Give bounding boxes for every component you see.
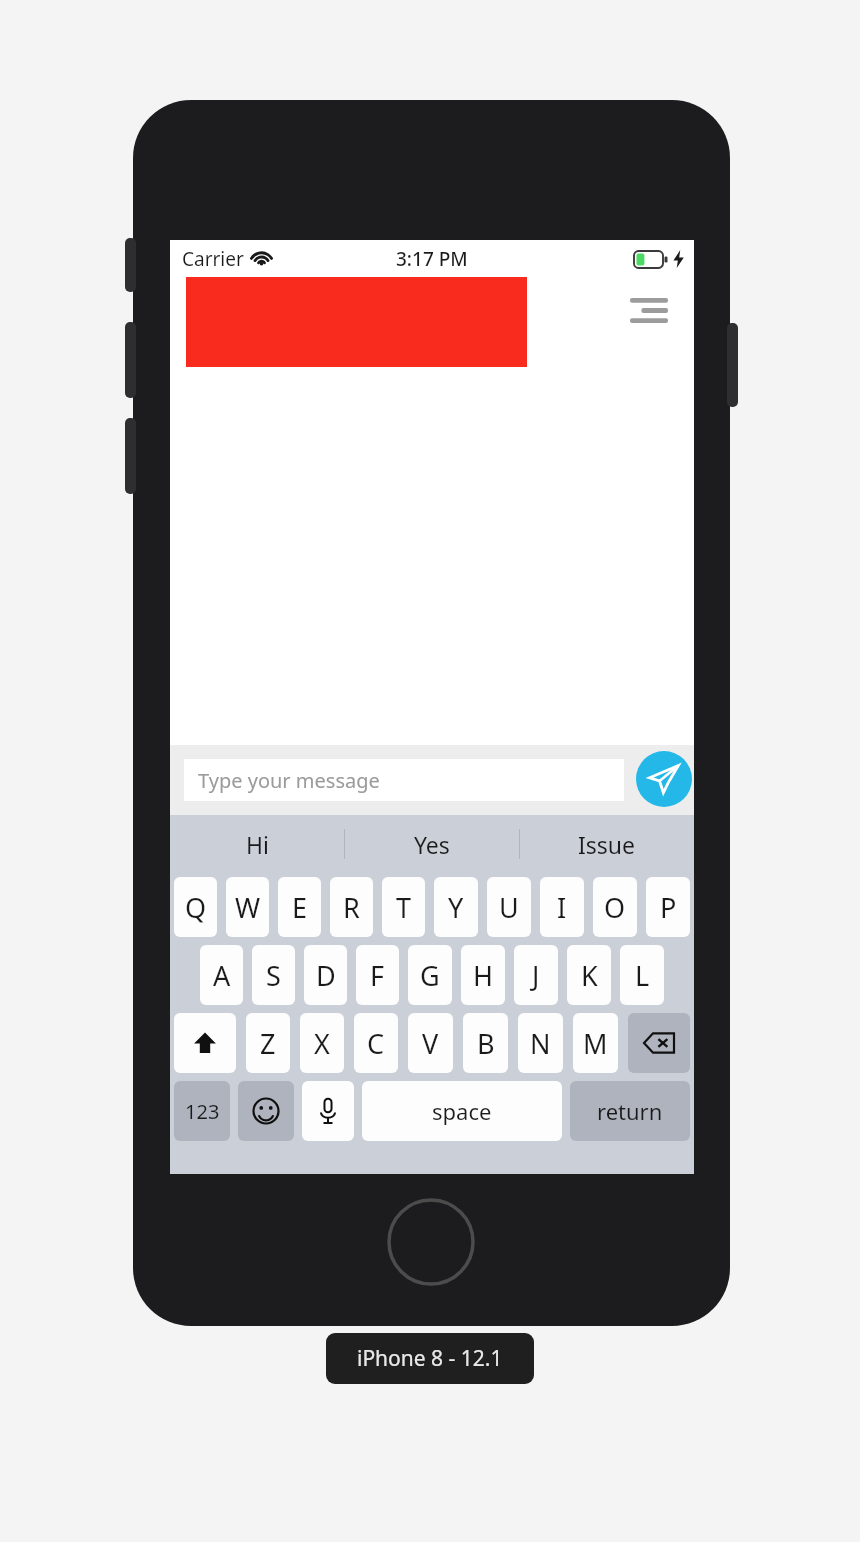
button[interactable]: Y [434, 877, 478, 937]
button[interactable]: D [304, 945, 347, 1005]
staticText: return [597, 1096, 663, 1126]
button[interactable]: Q [174, 877, 217, 937]
button[interactable]: S [252, 945, 295, 1005]
staticText: G [420, 957, 440, 994]
button[interactable]: return [570, 1081, 690, 1141]
button[interactable]: R [330, 877, 373, 937]
staticText: A [213, 957, 231, 994]
button[interactable]: Menu [620, 286, 678, 334]
staticText: X [314, 1025, 330, 1062]
staticText: U [499, 889, 519, 926]
button[interactable]: Dictation [302, 1081, 354, 1141]
button[interactable]: E [278, 877, 321, 937]
button[interactable]: 123 [174, 1081, 230, 1141]
staticText: R [343, 889, 360, 926]
button[interactable]: Emoji [238, 1081, 294, 1141]
staticText: Q [185, 889, 207, 926]
staticText: Y [448, 889, 464, 926]
button[interactable]: Shift [174, 1013, 236, 1073]
button[interactable]: M [573, 1013, 618, 1073]
staticText: W [235, 889, 261, 926]
button[interactable]: X [300, 1013, 344, 1073]
staticText: D [316, 957, 336, 994]
button[interactable]: H [461, 945, 505, 1005]
staticText: iPhone 8 - 12.1 [357, 1344, 503, 1373]
staticText: J [532, 957, 540, 994]
button[interactable]: J [514, 945, 558, 1005]
button[interactable]: A [200, 945, 243, 1005]
staticText: F [370, 957, 385, 994]
button[interactable]: K [567, 945, 611, 1005]
staticText: L [635, 957, 650, 994]
button[interactable]: Hi [170, 815, 344, 873]
staticText: B [477, 1025, 495, 1062]
staticText: N [530, 1025, 551, 1062]
staticText: 3:17 PM [396, 246, 468, 272]
button[interactable]: Yes [345, 815, 519, 873]
staticText: P [660, 889, 677, 926]
button[interactable]: I [540, 877, 584, 937]
button[interactable]: Issue [520, 815, 694, 873]
button[interactable]: space [362, 1081, 562, 1141]
staticText: K [581, 957, 598, 994]
button[interactable]: L [620, 945, 664, 1005]
staticText: V [422, 1025, 439, 1062]
staticText: Issue [578, 829, 636, 860]
staticText: Yes [414, 829, 450, 860]
staticText: Type your message [198, 767, 380, 794]
button[interactable]: W [226, 877, 269, 937]
staticText: S [266, 957, 281, 994]
staticText: C [367, 1025, 385, 1062]
staticText: Z [260, 1025, 276, 1062]
button[interactable]: G [408, 945, 452, 1005]
staticText: space [432, 1096, 492, 1126]
staticText: I [557, 889, 567, 926]
button[interactable]: Backspace [628, 1013, 690, 1073]
button[interactable]: T [382, 877, 425, 937]
button[interactable]: Send [636, 751, 692, 807]
staticText: Carrier [182, 246, 244, 272]
button[interactable]: C [354, 1013, 398, 1073]
button[interactable]: P [646, 877, 690, 937]
button[interactable]: Z [246, 1013, 290, 1073]
button[interactable]: N [518, 1013, 563, 1073]
staticText: M [583, 1025, 608, 1062]
button[interactable]: V [408, 1013, 453, 1073]
button[interactable]: F [356, 945, 399, 1005]
staticText: Hi [246, 829, 269, 860]
button[interactable]: Type your message [184, 759, 624, 801]
button[interactable]: U [487, 877, 531, 937]
button[interactable]: O [593, 877, 637, 937]
button[interactable]: B [463, 1013, 508, 1073]
staticText: E [292, 889, 308, 926]
staticText: T [396, 889, 412, 926]
staticText: O [604, 889, 626, 926]
staticText: H [473, 957, 494, 994]
staticText: 123 [185, 1098, 220, 1125]
